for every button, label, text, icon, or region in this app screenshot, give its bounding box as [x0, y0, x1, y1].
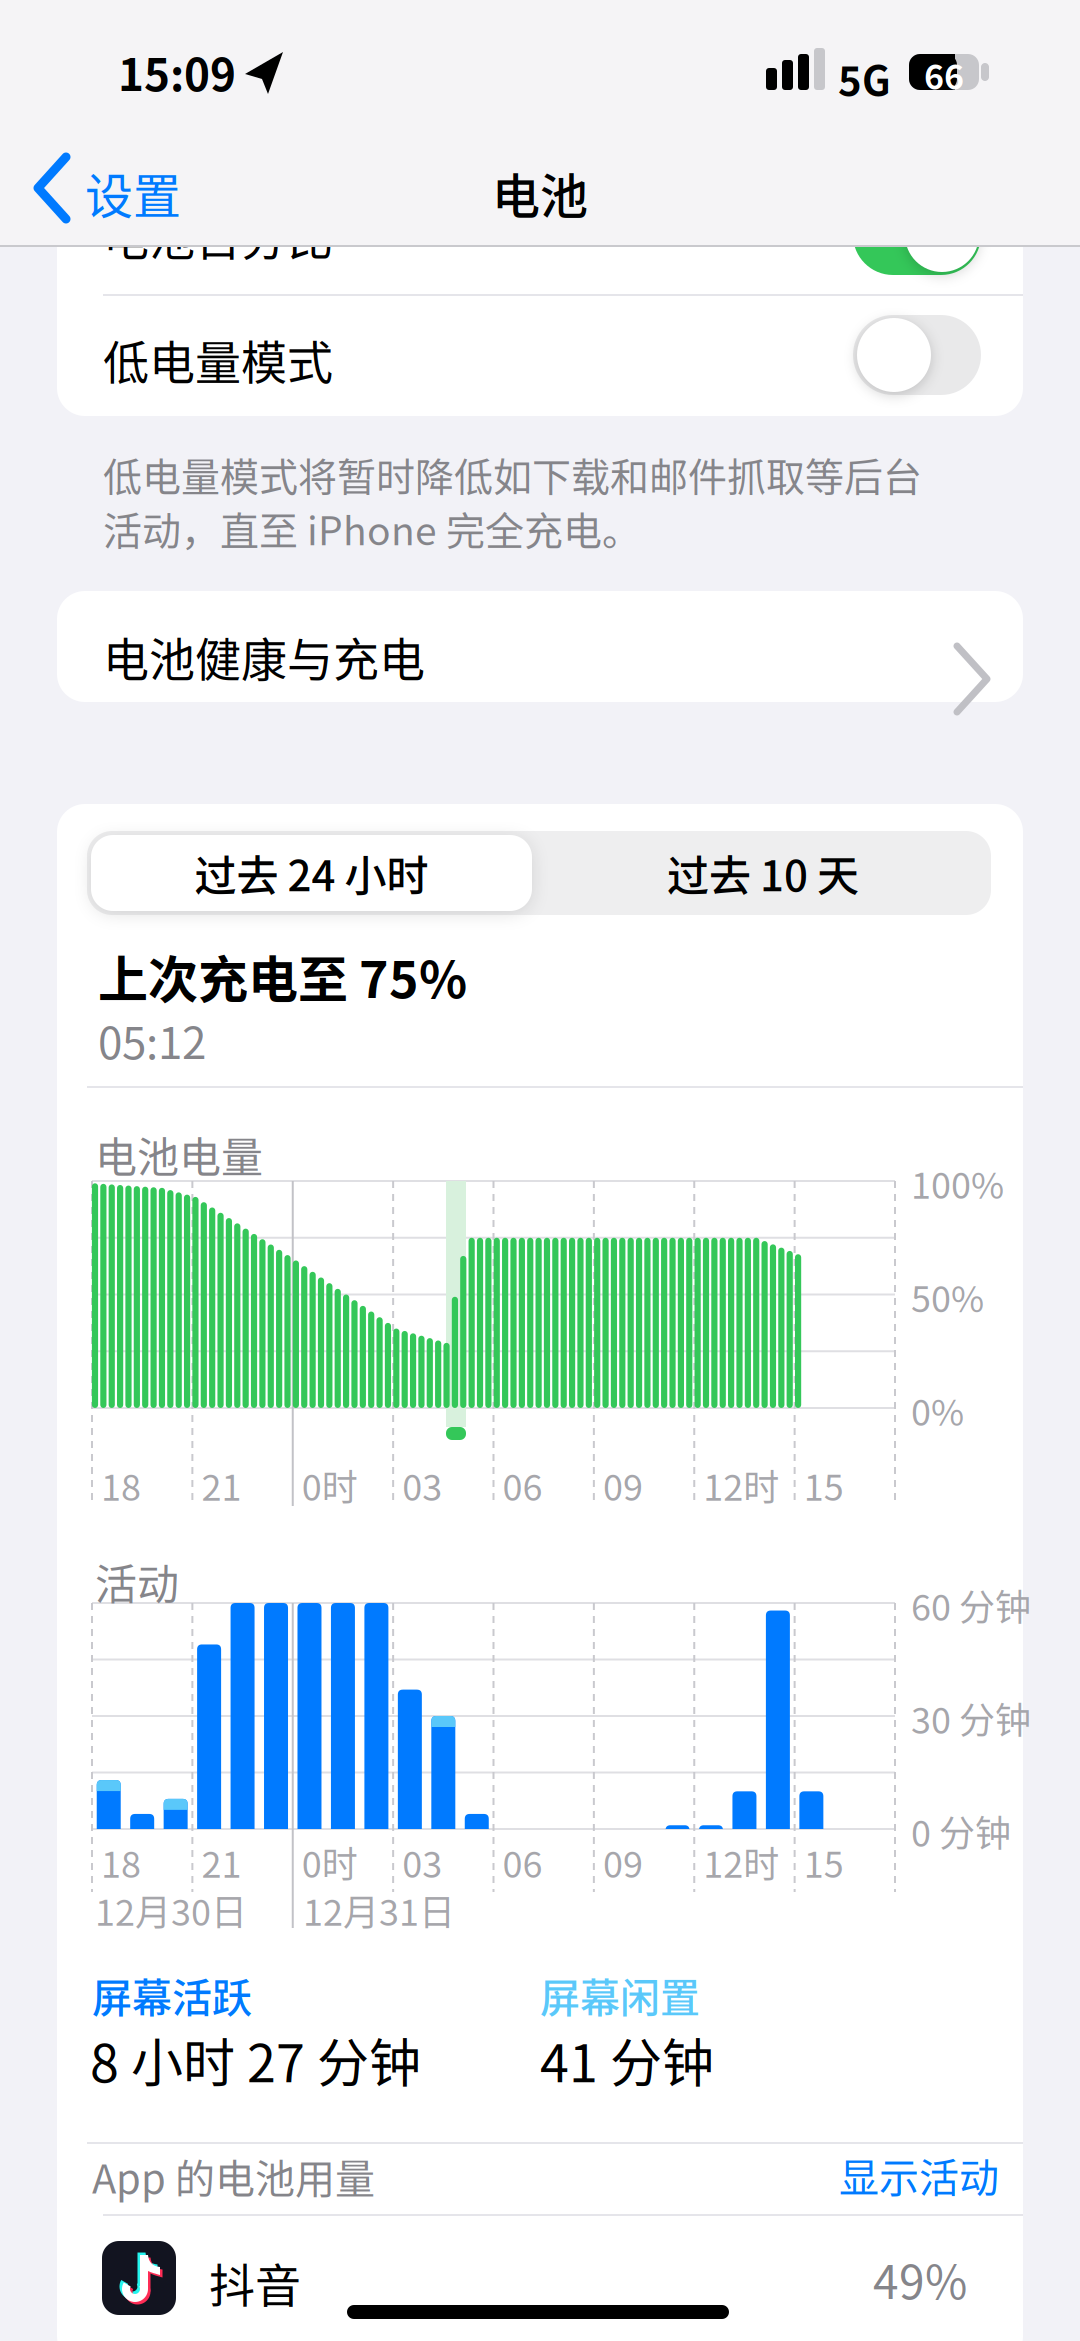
staticText: 抖音: [209, 2249, 301, 2316]
staticText: 66: [924, 50, 964, 99]
button[interactable]: 设置: [30, 155, 250, 225]
staticText: 电池: [492, 158, 588, 227]
staticText: 18: [101, 1836, 141, 1888]
staticText: 0时: [302, 1836, 358, 1888]
staticText: 15: [804, 1836, 844, 1888]
staticText: App 的电池用量: [92, 2147, 375, 2205]
staticText: 电池电量: [95, 1124, 263, 1185]
button[interactable]: 显示活动: [799, 2145, 999, 2205]
staticText: 03: [402, 1836, 442, 1888]
staticText: 21: [201, 1836, 241, 1888]
staticText: 06: [502, 1459, 542, 1511]
staticText: 设置: [85, 158, 181, 227]
staticText: 18: [101, 1459, 141, 1511]
staticText: 12月30日: [95, 1884, 247, 1936]
staticText: 21: [201, 1459, 241, 1511]
staticText: 09: [603, 1836, 643, 1888]
staticText: 0%: [911, 1384, 964, 1436]
staticText: 30 分钟: [911, 1692, 1031, 1744]
staticText: 12时: [703, 1836, 779, 1888]
staticText: 屏幕闲置: [540, 1966, 700, 2024]
staticText: 15: [804, 1459, 844, 1511]
staticText: 8 小时 27 分钟: [90, 2022, 421, 2097]
staticText: 电池百分比: [103, 202, 333, 269]
button[interactable]: 过去 24 小时: [91, 835, 532, 911]
staticText: 05:12: [98, 1008, 206, 1072]
staticText: 03: [402, 1459, 442, 1511]
staticText: 低电量模式将暂时降低如下载和邮件抓取等后台: [103, 446, 922, 502]
staticText: 06: [502, 1836, 542, 1888]
staticText: 低电量模式: [103, 326, 333, 393]
staticText: 0时: [302, 1459, 358, 1511]
staticText: 12时: [703, 1459, 779, 1511]
button[interactable]: 过去 10 天: [543, 835, 983, 911]
staticText: 60 分钟: [911, 1579, 1031, 1631]
staticText: 上次充电至 75%: [98, 940, 467, 1012]
staticText: 过去 24 小时: [194, 843, 428, 903]
staticText: 屏幕活跃: [92, 1966, 252, 2024]
button[interactable]: 抖音: [57, 2216, 1023, 2341]
staticText: 电池健康与充电: [103, 623, 425, 690]
staticText: 显示活动: [839, 2146, 999, 2204]
staticText: 49%: [873, 2246, 967, 2312]
staticText: 5G: [838, 49, 891, 107]
staticText: 活动，直至 iPhone 完全充电。: [103, 500, 641, 556]
button[interactable]: 低电量模式: [57, 296, 1023, 415]
staticText: 15:09: [118, 40, 236, 104]
staticText: 活动: [95, 1551, 179, 1612]
staticText: 100%: [911, 1157, 1004, 1209]
staticText: 12月31日: [303, 1884, 455, 1936]
staticText: 09: [603, 1459, 643, 1511]
staticText: 0 分钟: [911, 1805, 1011, 1857]
staticText: 41 分钟: [540, 2022, 714, 2097]
button[interactable]: 电池健康与充电: [57, 591, 1023, 702]
staticText: 过去 10 天: [667, 843, 859, 903]
staticText: 50%: [911, 1270, 984, 1323]
